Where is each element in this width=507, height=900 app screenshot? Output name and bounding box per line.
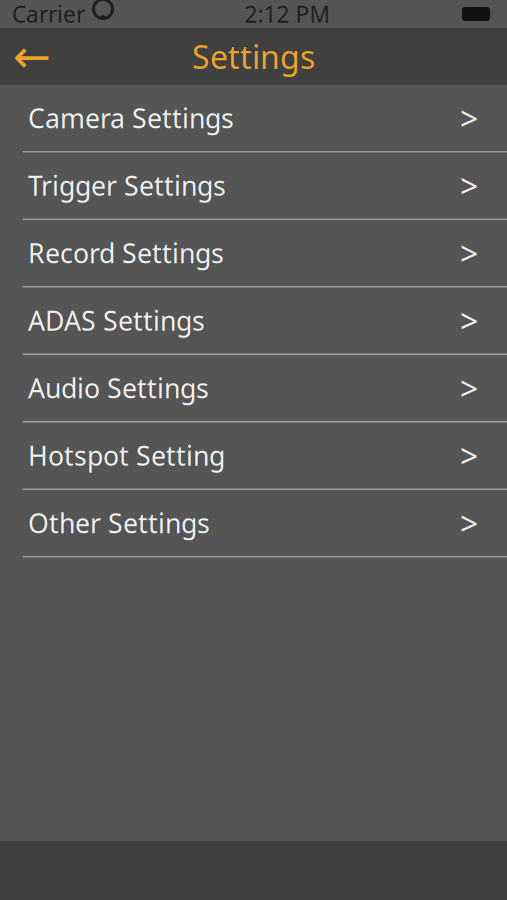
staticText: Hotspot Setting xyxy=(28,438,225,473)
staticText: Trigger Settings xyxy=(28,168,226,203)
staticText: ← xyxy=(13,31,51,82)
staticText: Settings xyxy=(192,35,315,78)
button[interactable]: Hotspot Setting xyxy=(0,422,507,490)
button[interactable]: Other Settings xyxy=(0,490,507,557)
button[interactable]: Record Settings xyxy=(0,220,507,287)
button[interactable]: Trigger Settings xyxy=(0,152,507,220)
staticText: Other Settings xyxy=(28,505,210,541)
button[interactable]: ADAS Settings xyxy=(0,287,507,355)
button[interactable]: Camera Settings xyxy=(0,85,507,152)
staticText: ADAS Settings xyxy=(28,303,205,338)
staticText: > xyxy=(460,97,478,139)
staticText: Carrier xyxy=(12,0,85,29)
staticText: > xyxy=(460,299,478,342)
button[interactable]: Back xyxy=(0,28,64,85)
staticText: Audio Settings xyxy=(28,370,209,406)
staticText: > xyxy=(460,434,478,477)
staticText: Record Settings xyxy=(28,235,224,271)
staticText: > xyxy=(460,232,478,274)
staticText: Camera Settings xyxy=(28,100,234,136)
staticText: > xyxy=(460,502,478,544)
staticText: 2:12 PM xyxy=(244,0,330,29)
staticText: > xyxy=(460,367,478,409)
button[interactable]: Audio Settings xyxy=(0,355,507,422)
staticText: > xyxy=(460,164,478,207)
